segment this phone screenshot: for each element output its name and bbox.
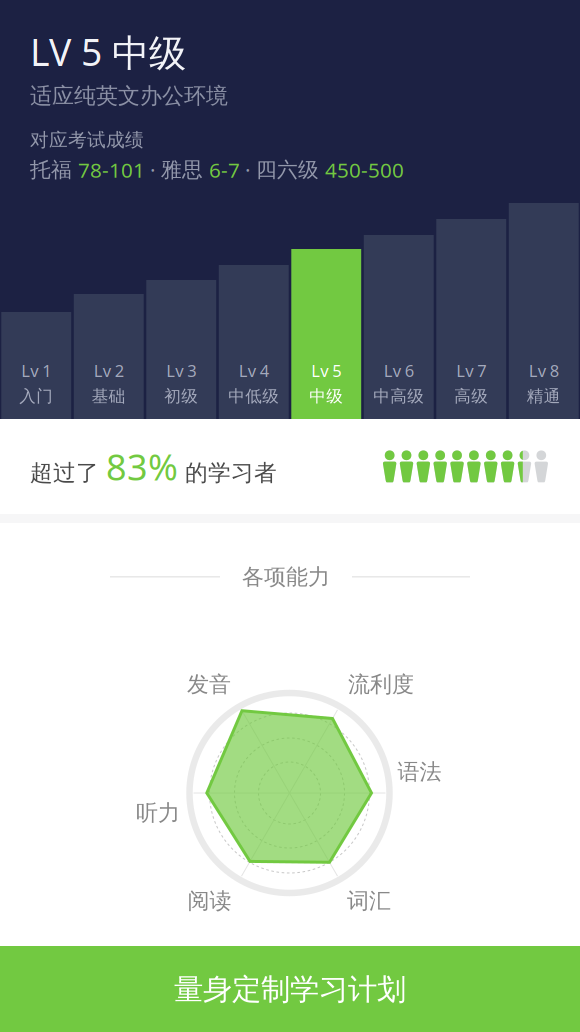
staticText: ·	[145, 156, 161, 184]
staticText: 各项能力	[242, 563, 330, 591]
staticText: 对应考试成绩	[30, 128, 144, 152]
staticText: 83%	[106, 442, 178, 491]
staticText: 雅思	[161, 157, 209, 183]
staticText: 精通	[527, 386, 561, 407]
staticText: Lv 8	[529, 359, 559, 382]
button[interactable]: 量身定制学习计划	[0, 946, 580, 1032]
staticText: Lv 6	[384, 359, 414, 382]
staticText: 初级	[164, 386, 198, 407]
staticText: 阅读	[187, 887, 231, 915]
staticText: Lv 7	[456, 359, 486, 382]
staticText: 中级	[309, 386, 343, 407]
staticText: Lv 5	[311, 359, 341, 382]
staticText: LV 5 中级	[30, 26, 186, 77]
staticText: Lv 2	[94, 359, 124, 382]
staticText: 的学习者	[178, 459, 277, 487]
staticText: 听力	[136, 799, 180, 827]
staticText: 入门	[19, 386, 53, 407]
staticText: Lv 4	[239, 359, 269, 382]
staticText: 450-500	[325, 156, 404, 184]
staticText: 中高级	[373, 386, 424, 407]
staticText: 中低级	[228, 386, 279, 407]
staticText: 四六级	[256, 157, 325, 183]
staticText: ·	[240, 156, 256, 184]
staticText: 高级	[454, 386, 488, 407]
staticText: Lv 1	[21, 359, 51, 382]
staticText: 托福	[30, 157, 78, 183]
staticText: Lv 3	[166, 359, 196, 382]
staticText: 发音	[187, 671, 231, 698]
staticText: 词汇	[347, 887, 391, 915]
staticText: 适应纯英文办公环境	[30, 82, 228, 110]
staticText: 78-101	[78, 156, 145, 184]
staticText: 语法	[397, 758, 441, 786]
staticText: 量身定制学习计划	[174, 971, 406, 1008]
staticText: 超过了	[30, 459, 106, 487]
staticText: 流利度	[348, 671, 414, 698]
staticText: 6-7	[209, 156, 240, 184]
staticText: 基础	[92, 386, 126, 407]
